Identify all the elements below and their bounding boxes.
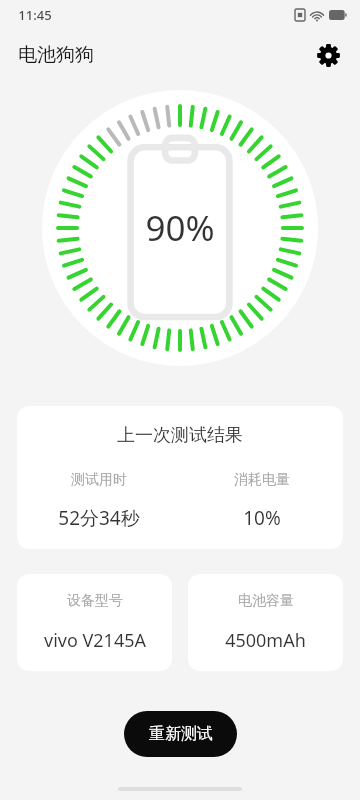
staticText: 11:45 bbox=[18, 6, 52, 24]
staticText: 测试用时 bbox=[71, 471, 127, 489]
staticText: 消耗电量 bbox=[234, 471, 290, 489]
staticText: 电池狗狗 bbox=[18, 43, 94, 67]
staticText: 90% bbox=[145, 204, 215, 252]
staticText: 4500mAh bbox=[225, 628, 306, 653]
button[interactable]: 设备型号 bbox=[17, 574, 172, 671]
button[interactable]: 上一次测试结果 bbox=[17, 406, 343, 549]
button[interactable]: Settings bbox=[309, 36, 347, 74]
staticText: 上一次测试结果 bbox=[117, 424, 243, 447]
staticText: vivo V2145A bbox=[44, 628, 146, 653]
button[interactable]: 重新测试 bbox=[124, 711, 237, 757]
button[interactable]: 电池容量 bbox=[188, 574, 343, 671]
staticText: 52分34秒 bbox=[58, 505, 140, 531]
staticText: 电池容量 bbox=[238, 592, 294, 610]
staticText: 重新测试 bbox=[149, 724, 213, 744]
staticText: 10% bbox=[243, 505, 281, 531]
staticText: 设备型号 bbox=[67, 592, 123, 610]
